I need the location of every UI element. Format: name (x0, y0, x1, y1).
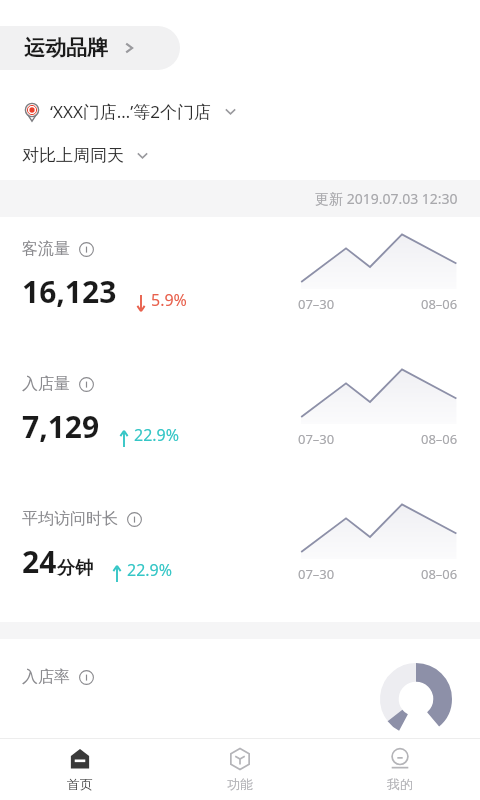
staticText: 入店量 (22, 374, 70, 394)
staticText: 分钟 (57, 557, 93, 580)
button[interactable]: 功能 (160, 738, 320, 800)
staticText: 08–06 (421, 430, 458, 448)
staticText: 07–30 (298, 565, 335, 583)
staticText: 对比上周同天 (22, 145, 124, 166)
staticText: 08–06 (421, 295, 458, 313)
staticText: 16,123 (22, 271, 117, 312)
button[interactable]: 我的 (320, 738, 480, 800)
staticText: 7,129 (22, 406, 100, 447)
staticText: 22.9% (134, 424, 180, 446)
button[interactable]: 客流量 (0, 217, 480, 352)
button[interactable]: 平均访问时长 (0, 487, 480, 622)
staticText: 5.9% (151, 289, 187, 311)
staticText: 运动品牌 (24, 35, 108, 61)
staticText: 功能 (227, 776, 253, 792)
staticText: 07–30 (298, 295, 335, 313)
button[interactable]: 运动品牌 (0, 26, 180, 70)
staticText: 平均访问时长 (22, 509, 118, 529)
button[interactable]: 对比上周同天 (0, 145, 480, 166)
button[interactable]: 入店率 (0, 639, 480, 721)
staticText: 更新 2019.07.03 12:30 (315, 189, 458, 208)
staticText: 首页 (67, 776, 93, 792)
button[interactable]: 首页 (0, 738, 160, 800)
staticText: 我的 (387, 776, 413, 792)
staticText: 08–06 (421, 565, 458, 583)
staticText: 客流量 (22, 239, 70, 259)
button[interactable]: 入店量 (0, 352, 480, 487)
staticText: 07–30 (298, 430, 335, 448)
button[interactable]: ‘XXX门店…’等2个门店 (0, 100, 480, 123)
staticText: 22.9% (127, 559, 173, 581)
staticText: 24 (22, 541, 57, 582)
staticText: ‘XXX门店…’等2个门店 (50, 100, 212, 123)
staticText: 入店率 (22, 667, 70, 687)
